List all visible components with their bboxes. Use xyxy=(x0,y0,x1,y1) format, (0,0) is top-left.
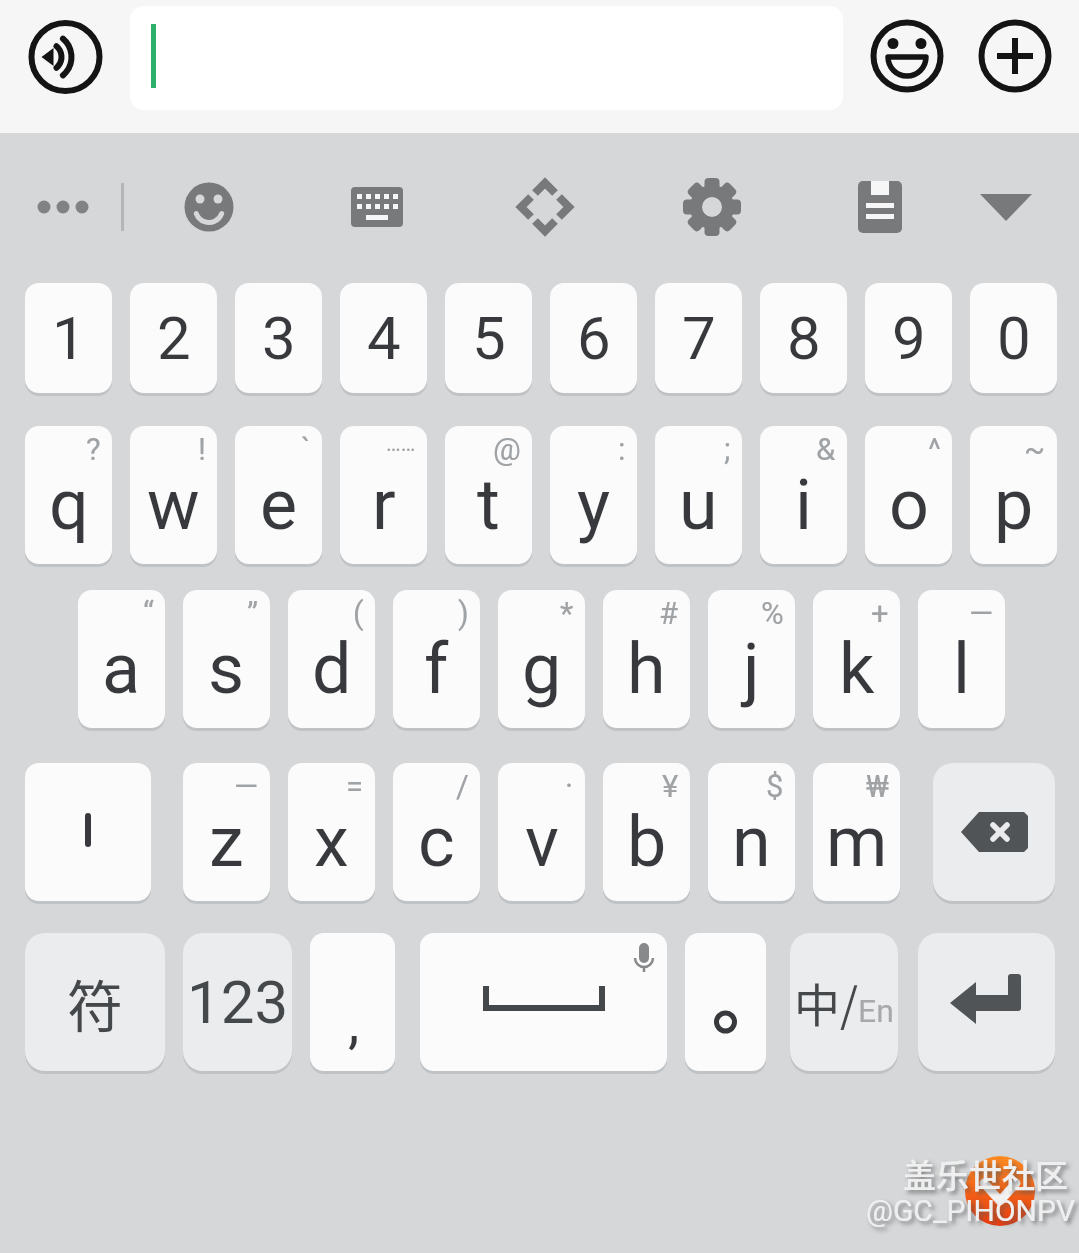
button[interactable]: 3 xyxy=(235,283,322,393)
staticText: w xyxy=(147,464,200,546)
button[interactable]: 123 xyxy=(183,933,292,1071)
staticText: n xyxy=(732,801,771,883)
staticText: u xyxy=(679,464,718,546)
staticText: = xyxy=(346,768,364,804)
button[interactable]: 6 xyxy=(550,283,637,393)
button[interactable]: v xyxy=(498,763,585,901)
button[interactable]: 9 xyxy=(865,283,952,393)
button[interactable]: e xyxy=(235,426,322,564)
staticText: ! xyxy=(198,431,206,467)
staticText: 7 xyxy=(682,303,716,373)
staticText: * xyxy=(560,595,574,631)
button[interactable]: 中/En xyxy=(790,933,898,1071)
staticText: # xyxy=(659,595,679,631)
button[interactable]: i xyxy=(760,426,847,564)
button[interactable]: u xyxy=(655,426,742,564)
button[interactable]: 符 xyxy=(25,933,165,1071)
staticText: ¥ xyxy=(662,768,679,804)
staticText: h xyxy=(627,628,666,710)
button[interactable]: 2 xyxy=(130,283,217,393)
staticText: · xyxy=(565,768,574,804)
staticText: 0 xyxy=(997,303,1031,373)
staticText: , xyxy=(348,988,360,1056)
button[interactable] xyxy=(14,157,114,257)
button[interactable] xyxy=(25,763,151,901)
staticText: j xyxy=(743,628,760,710)
button[interactable]: f xyxy=(393,590,480,728)
staticText: a xyxy=(102,628,141,710)
staticText: c xyxy=(418,801,455,883)
staticText: 3 xyxy=(262,303,296,373)
staticText: & xyxy=(816,431,836,467)
button[interactable]: h xyxy=(603,590,690,728)
button[interactable]: 7 xyxy=(655,283,742,393)
button[interactable] xyxy=(420,933,667,1071)
button[interactable] xyxy=(933,763,1055,901)
button[interactable]: r xyxy=(340,426,427,564)
button[interactable]: l xyxy=(918,590,1005,728)
button[interactable]: 8 xyxy=(760,283,847,393)
button[interactable] xyxy=(918,933,1055,1071)
staticText: o xyxy=(889,464,929,546)
button[interactable]: n xyxy=(708,763,795,901)
staticText: b xyxy=(627,801,667,883)
staticText: 4 xyxy=(367,303,401,373)
button[interactable] xyxy=(956,157,1056,257)
staticText: v xyxy=(525,801,559,883)
staticText: 6 xyxy=(577,303,611,373)
staticText: 1 xyxy=(52,303,86,373)
button[interactable] xyxy=(130,6,843,110)
button[interactable] xyxy=(159,157,259,257)
button[interactable]: t xyxy=(445,426,532,564)
button[interactable]: w xyxy=(130,426,217,564)
button[interactable]: o xyxy=(865,426,952,564)
button[interactable] xyxy=(865,14,949,98)
button[interactable]: z xyxy=(183,763,270,901)
button[interactable]: p xyxy=(970,426,1057,564)
staticText: $ xyxy=(766,768,784,804)
button[interactable]: s xyxy=(183,590,270,728)
staticText: + xyxy=(871,595,889,631)
staticText: ? xyxy=(86,431,101,467)
button[interactable]: k xyxy=(813,590,900,728)
button[interactable]: 1 xyxy=(25,283,112,393)
button[interactable]: 5 xyxy=(445,283,532,393)
staticText: ) xyxy=(458,595,469,631)
staticText: f xyxy=(424,628,449,710)
button[interactable] xyxy=(973,14,1057,98)
staticText: t xyxy=(477,464,500,546)
button[interactable]: x xyxy=(288,763,375,901)
button[interactable] xyxy=(662,157,762,257)
staticText: g xyxy=(522,628,562,710)
button[interactable] xyxy=(830,157,930,257)
staticText: z xyxy=(209,801,244,883)
staticText: i xyxy=(795,464,813,546)
staticText: m xyxy=(826,801,888,883)
button[interactable] xyxy=(495,157,595,257)
button[interactable]: 4 xyxy=(340,283,427,393)
button[interactable]: j xyxy=(708,590,795,728)
staticText: ` xyxy=(301,431,311,467)
button[interactable] xyxy=(327,157,427,257)
button[interactable]: d xyxy=(288,590,375,728)
staticText: ” xyxy=(247,595,259,631)
button[interactable]: g xyxy=(498,590,585,728)
staticText: — xyxy=(969,595,994,631)
staticText: 盖乐世社区 xyxy=(903,1150,1068,1198)
staticText: 9 xyxy=(892,303,926,373)
button[interactable]: , xyxy=(310,933,395,1071)
button[interactable]: m xyxy=(813,763,900,901)
button[interactable]: q xyxy=(25,426,112,564)
staticText: s xyxy=(208,628,245,710)
staticText: “ xyxy=(143,595,154,631)
staticText: ₩ xyxy=(866,768,889,804)
staticText: k xyxy=(839,628,875,710)
button[interactable]: 0 xyxy=(970,283,1057,393)
staticText: 符 xyxy=(67,962,123,1043)
button[interactable]: b xyxy=(603,763,690,901)
button[interactable]: a xyxy=(78,590,165,728)
button[interactable]: c xyxy=(393,763,480,901)
button[interactable] xyxy=(24,16,108,100)
button[interactable]: y xyxy=(550,426,637,564)
button[interactable] xyxy=(685,933,766,1071)
